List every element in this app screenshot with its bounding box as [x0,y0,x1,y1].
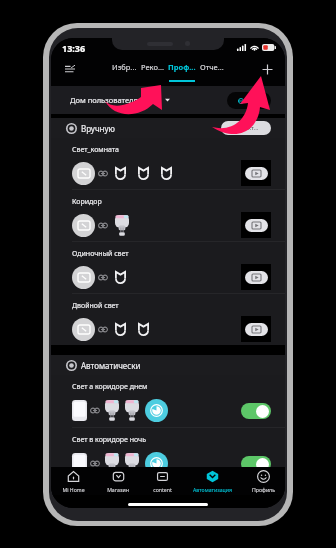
staticText: Вручную [81,123,115,134]
button[interactable]: Проф... [168,62,196,82]
staticText: Проф... [168,62,196,72]
button[interactable]: Toggle automation [241,403,271,419]
staticText: Mi Home [62,486,85,493]
staticText: content [153,486,172,493]
button[interactable]: Магазин [96,467,140,495]
staticText: Редакт... [234,124,259,132]
staticText: Одиночный свет [72,249,129,259]
button[interactable]: Автоматизация [184,467,241,495]
button[interactable]: Toggle automation [241,456,271,472]
staticText: 13:36 [62,42,86,54]
staticText: Свет а коридоре днем [72,382,148,392]
staticText: Свет в коридоре ночь [72,435,147,445]
button[interactable]: Фи... [227,92,271,109]
button[interactable]: Отче... [200,62,224,72]
button[interactable]: Свет а коридоре днем [51,375,285,427]
staticText: Коридор [72,197,102,207]
button[interactable]: Избр... [112,62,137,72]
button[interactable]: Реко... [141,62,164,72]
button[interactable]: Run scene [241,160,271,186]
button[interactable]: Дом пользователя Mi ...ii [70,95,170,105]
button[interactable]: Свет в коридоре ночь [51,428,285,480]
staticText: Избр... [112,62,137,72]
button[interactable]: Коридор [51,190,285,241]
button[interactable]: Двойной свет [51,294,285,345]
staticText: Магазин [107,486,129,493]
staticText: Профиль [252,486,275,493]
staticText: Автоматизация [193,486,232,493]
button[interactable]: Run scene [241,212,271,238]
button[interactable]: Редакт... [221,121,271,135]
button[interactable]: Run scene [241,264,271,290]
staticText: Реко... [141,62,164,72]
staticText: Фи... [246,96,261,105]
button[interactable]: Свет_комната [51,138,285,189]
button[interactable]: Run scene [241,316,271,342]
button[interactable]: Одиночный свет [51,242,285,293]
staticText: Автоматически [81,360,141,371]
staticText: Двойной свет [72,301,119,311]
button[interactable]: content [140,467,184,495]
staticText: Свет_комната [72,145,119,155]
button[interactable]: Add [258,60,276,78]
staticText: Дом пользователя Mi ...ii [70,95,161,105]
staticText: Отче... [200,62,224,72]
button[interactable]: Mi Home [51,467,96,495]
button[interactable]: Menu [61,60,79,78]
button[interactable]: Профиль [241,467,285,495]
